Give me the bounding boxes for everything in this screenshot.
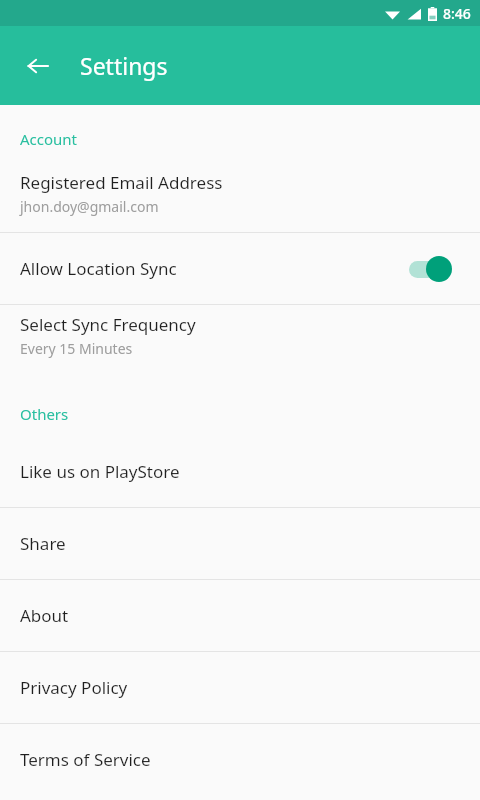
- staticText: Account: [20, 129, 480, 149]
- button[interactable]: Like us on PlayStore: [0, 436, 480, 507]
- button[interactable]: Terms of Service: [0, 724, 480, 795]
- button[interactable]: Back: [18, 46, 58, 86]
- staticText: Like us on PlayStore: [20, 460, 180, 483]
- button[interactable]: Allow Location Sync: [0, 233, 480, 304]
- staticText: Registered Email Address: [20, 171, 223, 194]
- button[interactable]: Select Sync Frequency: [0, 305, 480, 374]
- staticText: Others: [20, 404, 480, 424]
- other: Allow Location Sync toggle: [408, 256, 452, 282]
- staticText: Terms of Service: [20, 748, 151, 771]
- button[interactable]: Privacy Policy: [0, 652, 480, 723]
- button[interactable]: About: [0, 580, 480, 651]
- staticText: About: [20, 604, 69, 627]
- button[interactable]: Registered Email Address: [0, 163, 480, 232]
- staticText: Share: [20, 532, 66, 555]
- staticText: Settings: [80, 50, 168, 81]
- button[interactable]: Share: [0, 508, 480, 579]
- staticText: jhon.doy@gmail.com: [20, 197, 159, 216]
- staticText: Privacy Policy: [20, 676, 128, 699]
- staticText: 8:46: [443, 4, 471, 23]
- staticText: Every 15 Minutes: [20, 339, 133, 358]
- staticText: Select Sync Frequency: [20, 313, 196, 336]
- staticText: Allow Location Sync: [20, 257, 408, 280]
